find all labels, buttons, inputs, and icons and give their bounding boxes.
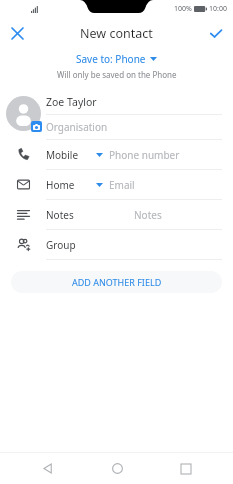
staticText: Phone number: [109, 148, 180, 162]
button[interactable]: Organisation: [46, 115, 222, 139]
button[interactable]: Cancel: [0, 18, 34, 48]
button[interactable]: Add photo: [0, 88, 46, 139]
button[interactable]: Recents: [164, 453, 208, 484]
button[interactable]: Save to: Phone: [72, 51, 161, 67]
button[interactable]: Notes: [0, 200, 233, 229]
button[interactable]: Group: [0, 230, 233, 259]
staticText: ADD ANOTHER FIELD: [72, 276, 162, 288]
staticText: Email: [109, 178, 135, 192]
button[interactable]: Back: [25, 453, 69, 484]
staticText: Home: [46, 178, 75, 192]
staticText: Mobile: [46, 148, 79, 162]
staticText: Zoe Taylor: [46, 95, 97, 109]
button[interactable]: Save: [199, 18, 233, 48]
staticText: Will only be saved on the Phone: [57, 69, 177, 80]
staticText: Organisation: [46, 120, 108, 134]
staticText: 100%: [174, 4, 192, 14]
button[interactable]: Mobile: [0, 140, 233, 169]
button[interactable]: Zoe Taylor: [46, 89, 222, 114]
staticText: Group: [46, 238, 76, 252]
staticText: Save to: Phone: [76, 52, 146, 66]
staticText: 10:00: [209, 4, 227, 14]
button[interactable]: Home: [95, 453, 139, 484]
staticText: New contact: [80, 25, 153, 42]
button[interactable]: ADD ANOTHER FIELD: [11, 271, 222, 293]
staticText: Notes: [46, 208, 74, 222]
button[interactable]: Home: [0, 170, 233, 199]
staticText: Notes: [134, 208, 162, 222]
